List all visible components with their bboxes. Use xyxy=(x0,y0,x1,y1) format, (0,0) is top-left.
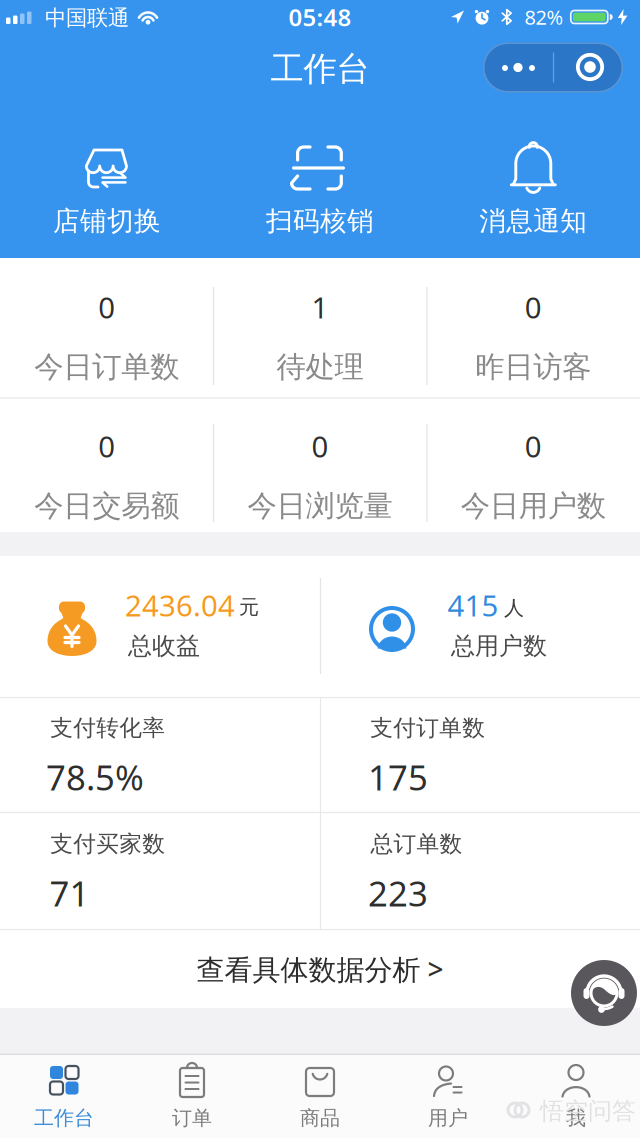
staticText: 支付转化率 xyxy=(50,714,165,742)
staticText: 查看具体数据分析 > xyxy=(196,950,443,988)
button[interactable]: 查看具体数据分析 > xyxy=(0,929,640,1008)
staticText: 总收益 xyxy=(128,631,200,661)
staticText: 223 xyxy=(368,870,428,916)
staticText: 2436.04 xyxy=(125,585,235,624)
staticText: 0 xyxy=(311,426,328,465)
staticText: 扫码核销 xyxy=(266,205,374,237)
staticText: 元 xyxy=(239,595,259,619)
staticText: 总订单数 xyxy=(370,830,462,858)
button[interactable]: 关闭小程序 xyxy=(553,42,623,92)
staticText: 0 xyxy=(98,287,115,326)
staticText: 1 xyxy=(311,287,328,326)
staticText: 工作台 xyxy=(270,48,369,89)
staticText: 工作台 xyxy=(34,1106,94,1130)
staticText: 人 xyxy=(504,596,524,620)
button[interactable]: 订单 xyxy=(128,1055,256,1138)
staticText: 商品 xyxy=(300,1106,340,1130)
button[interactable]: 消息通知 xyxy=(433,125,633,255)
staticText: 订单 xyxy=(172,1106,212,1130)
staticText: 今日交易额 xyxy=(34,488,179,524)
staticText: 175 xyxy=(368,754,428,800)
staticText: 0 xyxy=(525,426,542,465)
button[interactable]: 扫码核销 xyxy=(220,125,420,255)
staticText: 今日浏览量 xyxy=(247,488,392,524)
staticText: 415 xyxy=(447,585,498,624)
staticText: 消息通知 xyxy=(479,205,587,237)
staticText: 支付订单数 xyxy=(370,714,485,742)
staticText: 总用户数 xyxy=(451,631,547,661)
staticText: 今日订单数 xyxy=(34,349,179,385)
staticText: 82% xyxy=(524,4,563,30)
button[interactable]: 用户 xyxy=(384,1055,512,1138)
button[interactable]: 工作台 xyxy=(0,1055,128,1138)
button[interactable]: 店铺切换 xyxy=(7,125,207,255)
staticText: 中国联通 xyxy=(45,5,129,31)
staticText: 用户 xyxy=(428,1106,468,1130)
staticText: 78.5% xyxy=(46,754,144,800)
staticText: 昨日访客 xyxy=(475,349,591,385)
button[interactable]: 联系客服 xyxy=(571,960,637,1026)
staticText: 05:48 xyxy=(288,1,351,33)
button[interactable]: 更多 xyxy=(483,42,553,92)
staticText: 我 xyxy=(566,1106,586,1130)
staticText: 0 xyxy=(525,287,542,326)
staticText: 71 xyxy=(49,870,89,916)
staticText: 支付买家数 xyxy=(50,830,165,858)
button[interactable]: 商品 xyxy=(256,1055,384,1138)
staticText: 悟空问答 xyxy=(540,1096,636,1126)
staticText: 今日用户数 xyxy=(461,488,606,524)
staticText: 0 xyxy=(98,426,115,465)
button[interactable]: 我 xyxy=(512,1055,640,1138)
staticText: 待处理 xyxy=(276,349,363,385)
staticText: 店铺切换 xyxy=(53,205,161,237)
